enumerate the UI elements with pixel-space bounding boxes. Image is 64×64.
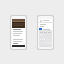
button[interactable]: Key <box>42 34 43 37</box>
button[interactable]: Key <box>50 42 51 45</box>
button[interactable]: Key <box>48 42 49 45</box>
button[interactable] <box>39 28 52 30</box>
button[interactable]: Key <box>44 42 45 45</box>
button[interactable]: Key <box>46 42 47 45</box>
button[interactable]: Key <box>40 34 41 37</box>
button[interactable]: Key <box>42 38 43 41</box>
button[interactable]: Key <box>44 38 45 41</box>
button[interactable]: Key <box>40 38 41 41</box>
